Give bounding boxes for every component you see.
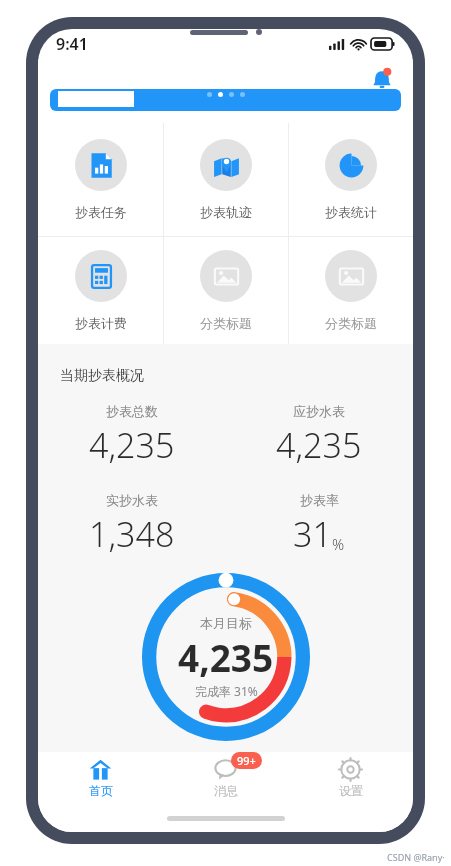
staticText: 抄表总数 [106,403,158,419]
staticText: 抄表统计 [325,204,377,220]
staticText: 4,235 [89,422,175,468]
staticText: 31 [293,511,332,557]
button[interactable]: 抄表任务 [38,123,163,236]
staticText: 实抄水表 [106,492,158,508]
staticText: % [332,534,345,554]
button[interactable]: 抄表计费 [38,237,163,344]
button[interactable]: 设置 [288,752,413,804]
button[interactable]: Notifications [365,63,399,97]
button[interactable]: 99+ [163,752,288,804]
staticText: 本月目标 [200,615,252,631]
staticText: 4,235 [276,422,362,468]
staticText: 分类标题 [200,315,252,331]
staticText: 分类标题 [325,315,377,331]
button[interactable]: 首页 [38,752,163,804]
staticText: 首页 [89,783,113,798]
staticText: 应抄水表 [293,403,345,419]
staticText: CSDN @Rany· [387,851,445,863]
button[interactable]: 抄表统计 [289,123,413,236]
staticText: 设置 [339,783,363,798]
staticText: 99+ [237,753,256,768]
staticText: 消息 [214,783,238,798]
staticText: 当期抄表概况 [60,367,144,385]
staticText: 抄表率 [300,492,339,508]
staticText: 9:41 [56,33,88,55]
staticText: 抄表计费 [75,315,127,331]
button[interactable]: 抄表轨迹 [164,123,288,236]
staticText: 抄表轨迹 [200,204,252,220]
button[interactable]: 分类标题 [164,237,288,344]
staticText: 4,235 [178,632,274,682]
button[interactable]: 分类标题 [289,237,413,344]
staticText: 完成率 31% [195,683,258,699]
staticText: 抄表任务 [75,204,127,220]
staticText: 1,348 [89,511,175,557]
